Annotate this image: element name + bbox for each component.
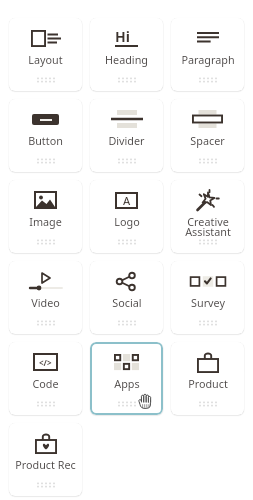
button[interactable]: Product Rec — [9, 423, 82, 496]
staticText: A — [123, 193, 131, 208]
staticText: Button — [28, 133, 63, 148]
staticText: Product — [188, 376, 228, 391]
staticText: Divider — [108, 133, 145, 148]
staticText: Social — [112, 295, 142, 310]
staticText: Layout — [28, 52, 63, 67]
staticText: Code — [32, 376, 59, 391]
button[interactable]: Layout — [9, 18, 82, 91]
staticText: Image — [29, 214, 62, 229]
staticText: Product Rec — [15, 457, 76, 472]
button[interactable]: Hi — [90, 18, 163, 91]
button[interactable]: Image — [9, 180, 82, 253]
staticText: Apps — [114, 376, 140, 391]
button[interactable]: Survey — [171, 261, 244, 334]
staticText: Paragraph — [181, 52, 235, 67]
staticText: Video — [31, 295, 60, 310]
staticText: Spacer — [190, 133, 225, 148]
button[interactable]: Social — [90, 261, 163, 334]
button[interactable]: Divider — [90, 99, 163, 172]
staticText: </> — [39, 357, 52, 368]
button[interactable]: Paragraph — [171, 18, 244, 91]
button[interactable]: Spacer — [171, 99, 244, 172]
button[interactable]: Apps — [90, 342, 163, 415]
button[interactable]: Button — [9, 99, 82, 172]
button[interactable]: A — [90, 180, 163, 253]
staticText: Creative Assistant — [185, 214, 231, 239]
staticText: Heading — [105, 52, 148, 67]
button[interactable]: Product — [171, 342, 244, 415]
button[interactable]: Video — [9, 261, 82, 334]
staticText: Hi — [115, 27, 130, 46]
button[interactable]: Creative Assistant — [171, 180, 244, 253]
button[interactable]: </> — [9, 342, 82, 415]
staticText: Logo — [114, 214, 140, 229]
staticText: Survey — [191, 295, 225, 310]
